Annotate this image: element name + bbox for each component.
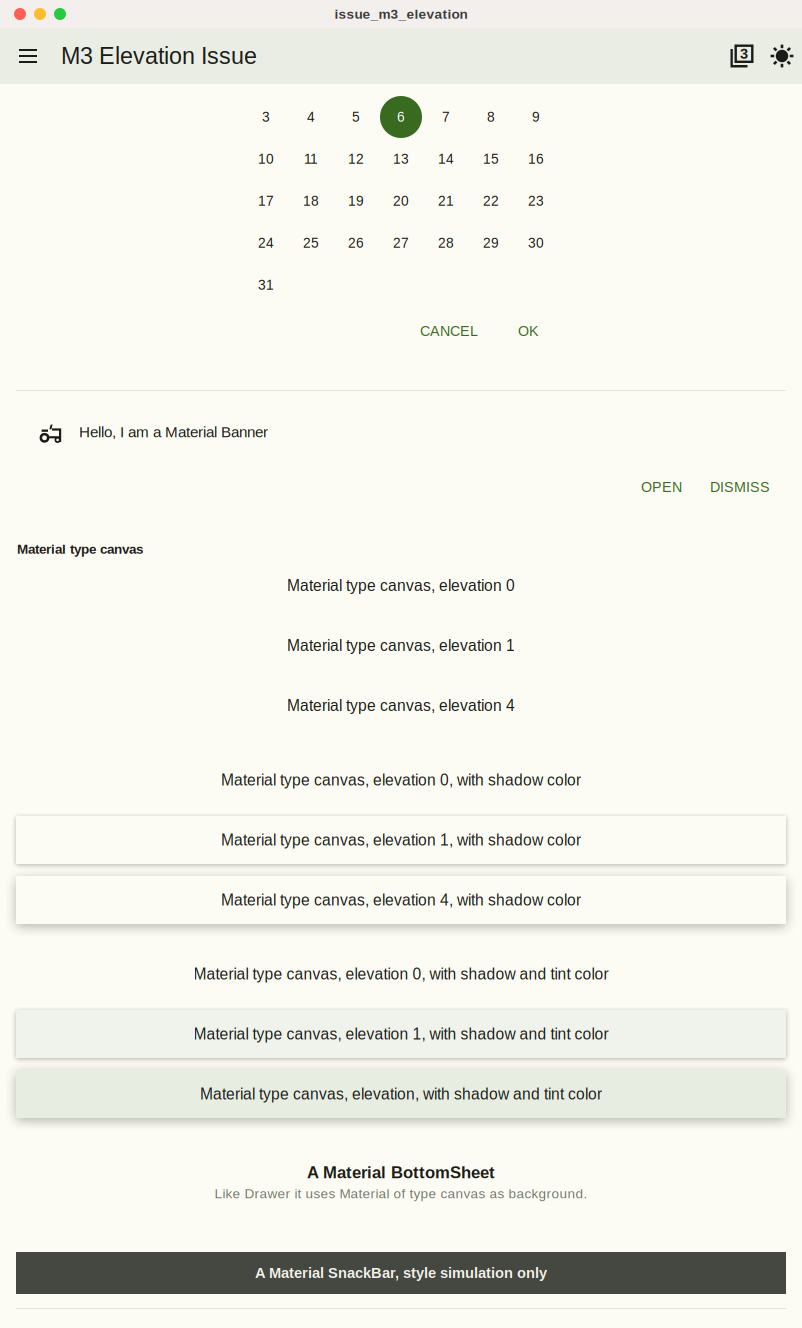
staticText: 8 (487, 109, 495, 125)
staticText: 23 (528, 193, 544, 209)
button[interactable]: 28 (423, 222, 468, 264)
button[interactable]: 24 (243, 222, 288, 264)
staticText: Like Drawer it uses Material of type can… (214, 1186, 587, 1201)
button[interactable]: 6 (378, 96, 423, 138)
staticText: 26 (348, 235, 364, 251)
button[interactable]: OPEN (627, 470, 696, 504)
staticText: 15 (483, 151, 499, 167)
button[interactable]: OK (498, 314, 559, 348)
button[interactable]: Toggle brightness (762, 28, 802, 84)
staticText: Material type canvas, elevation 4, with … (221, 891, 581, 909)
button[interactable]: 30 (513, 222, 558, 264)
staticText: 25 (303, 235, 319, 251)
button[interactable]: 20 (378, 180, 423, 222)
button[interactable]: 7 (423, 96, 468, 138)
button[interactable]: Open navigation drawer (8, 28, 48, 84)
staticText: CANCEL (420, 323, 478, 339)
staticText: 27 (393, 235, 409, 251)
staticText: 22 (483, 193, 499, 209)
staticText: 3 (740, 46, 748, 62)
button[interactable]: DISMISS (696, 470, 784, 504)
staticText: 19 (348, 193, 364, 209)
staticText: Material type canvas, elevation 0, with … (193, 965, 608, 983)
staticText: 9 (532, 109, 540, 125)
button[interactable]: 31 (243, 264, 288, 306)
button[interactable]: 9 (513, 96, 558, 138)
staticText: 11 (304, 151, 318, 167)
button[interactable]: 3 (243, 96, 288, 138)
staticText: issue_m3_elevation (334, 6, 467, 22)
staticText: OPEN (641, 479, 682, 495)
button[interactable]: 22 (468, 180, 513, 222)
button[interactable]: 14 (423, 138, 468, 180)
staticText: 12 (348, 151, 364, 167)
staticText: Material type canvas, elevation 1, with … (221, 831, 581, 849)
button[interactable]: 13 (378, 138, 423, 180)
button[interactable]: CANCEL (400, 314, 498, 348)
staticText: 20 (393, 193, 409, 209)
button[interactable]: Elevation level 3 (722, 28, 762, 84)
button[interactable]: 18 (288, 180, 333, 222)
button[interactable]: 17 (243, 180, 288, 222)
button[interactable]: 21 (423, 180, 468, 222)
button[interactable]: 25 (288, 222, 333, 264)
staticText: Material type canvas, elevation, with sh… (200, 1085, 602, 1103)
button[interactable]: 4 (288, 96, 333, 138)
button[interactable]: 8 (468, 96, 513, 138)
staticText: Material type canvas, elevation 1 (287, 637, 515, 654)
staticText: A Material SnackBar, style simulation on… (255, 1265, 547, 1281)
staticText: DISMISS (710, 479, 770, 495)
button[interactable]: Zoom window (54, 8, 66, 20)
staticText: 3 (262, 109, 270, 125)
staticText: 30 (528, 235, 544, 251)
button[interactable]: 16 (513, 138, 558, 180)
button[interactable]: 26 (333, 222, 378, 264)
staticText: A Material BottomSheet (307, 1163, 495, 1182)
staticText: 6 (397, 109, 405, 125)
button[interactable]: 12 (333, 138, 378, 180)
staticText: 10 (258, 151, 274, 167)
staticText: 21 (438, 193, 454, 209)
staticText: Material type canvas, elevation 1, with … (193, 1025, 608, 1043)
button[interactable]: 11 (288, 138, 333, 180)
button[interactable]: 27 (378, 222, 423, 264)
staticText: Material type canvas, elevation 0 (287, 577, 515, 594)
staticText: 16 (528, 151, 544, 167)
staticText: 7 (442, 109, 450, 125)
staticText: 13 (393, 151, 409, 167)
staticText: 14 (438, 151, 454, 167)
staticText: 24 (258, 235, 274, 251)
button[interactable]: Minimize window (34, 8, 46, 20)
staticText: OK (518, 323, 539, 339)
staticText: 18 (303, 193, 319, 209)
button[interactable]: 19 (333, 180, 378, 222)
staticText: Material type canvas, elevation 0, with … (221, 771, 581, 789)
button[interactable]: 5 (333, 96, 378, 138)
button[interactable]: Close window (14, 8, 26, 20)
staticText: Material type canvas, elevation 4 (287, 697, 515, 714)
button[interactable]: 23 (513, 180, 558, 222)
staticText: 31 (258, 277, 274, 293)
staticText: M3 Elevation Issue (61, 43, 257, 69)
staticText: 17 (258, 193, 274, 209)
staticText: Material type canvas (17, 541, 143, 556)
button[interactable]: 15 (468, 138, 513, 180)
staticText: 4 (307, 109, 315, 125)
button[interactable]: 29 (468, 222, 513, 264)
staticText: Hello, I am a Material Banner (79, 423, 268, 440)
staticText: 28 (438, 235, 454, 251)
button[interactable]: 10 (243, 138, 288, 180)
staticText: 29 (483, 235, 499, 251)
staticText: 5 (352, 109, 360, 125)
